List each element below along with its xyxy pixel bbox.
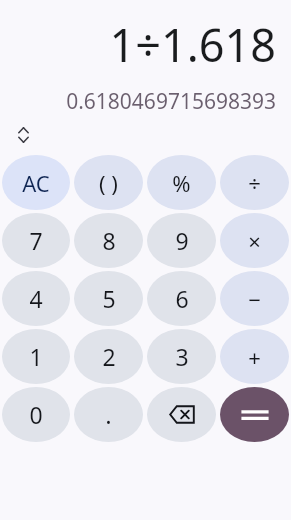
- staticText: 6: [175, 283, 189, 314]
- staticText: 5: [102, 283, 116, 314]
- staticText: 8: [102, 225, 116, 256]
- button[interactable]: AC: [2, 155, 70, 210]
- staticText: .: [105, 398, 112, 431]
- staticText: 4: [29, 283, 43, 314]
- staticText: 2: [102, 341, 116, 372]
- staticText: +: [248, 342, 261, 372]
- button[interactable]: 0: [2, 387, 70, 442]
- staticText: 0: [29, 399, 43, 430]
- button[interactable]: 6: [147, 271, 216, 326]
- button[interactable]: 1: [2, 329, 70, 384]
- staticText: 1: [29, 341, 43, 372]
- button[interactable]: Equals: [220, 387, 289, 442]
- staticText: ÷: [248, 168, 261, 198]
- button[interactable]: 7: [2, 213, 70, 268]
- button[interactable]: −: [220, 271, 289, 326]
- button[interactable]: %: [147, 155, 216, 210]
- button[interactable]: +: [220, 329, 289, 384]
- button[interactable]: 2: [74, 329, 143, 384]
- staticText: AC: [22, 168, 50, 198]
- button[interactable]: ×: [220, 213, 289, 268]
- button[interactable]: 8: [74, 213, 143, 268]
- button[interactable]: 5: [74, 271, 143, 326]
- button[interactable]: 4: [2, 271, 70, 326]
- button[interactable]: ( ): [74, 155, 143, 210]
- staticText: 7: [29, 225, 43, 256]
- button[interactable]: Expand result: [10, 122, 36, 148]
- button[interactable]: ÷: [220, 155, 289, 210]
- button[interactable]: .: [74, 387, 143, 442]
- staticText: 0.6180469715698393: [14, 87, 276, 116]
- button[interactable]: 3: [147, 329, 216, 384]
- staticText: 3: [175, 341, 189, 372]
- button[interactable]: 9: [147, 213, 216, 268]
- staticText: %: [172, 168, 191, 198]
- staticText: ×: [248, 226, 261, 256]
- staticText: ( ): [99, 168, 118, 198]
- staticText: 1÷1.618: [14, 14, 276, 75]
- staticText: 9: [175, 225, 189, 256]
- staticText: −: [248, 284, 261, 314]
- button[interactable]: Backspace: [147, 387, 216, 442]
